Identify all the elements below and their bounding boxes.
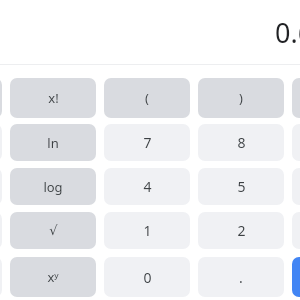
button[interactable]: Function key [0, 257, 2, 297]
staticText: 8 [237, 133, 246, 152]
staticText: ) [239, 89, 243, 107]
button[interactable]: xʸ [10, 257, 96, 297]
button[interactable]: 8 [198, 124, 284, 161]
staticText: 1 [143, 221, 152, 240]
button[interactable]: 4 [104, 168, 190, 205]
button[interactable]: Function key [0, 78, 2, 118]
staticText: ( [145, 89, 149, 107]
button[interactable]: Operator [292, 78, 300, 118]
staticText: ln [47, 134, 59, 152]
button[interactable]: Function key [0, 124, 2, 161]
button[interactable]: 5 [198, 168, 284, 205]
staticText: 2 [237, 221, 246, 240]
button[interactable]: Operator [292, 212, 300, 249]
staticText: √ [49, 223, 58, 238]
button[interactable]: √ [10, 212, 96, 249]
staticText: 7 [143, 133, 152, 152]
staticText: 0.666 [274, 14, 300, 51]
button[interactable]: 0 [104, 257, 190, 297]
button[interactable]: x! [10, 78, 96, 118]
staticText: x! [48, 89, 59, 107]
button[interactable]: 2 [198, 212, 284, 249]
button[interactable]: 1 [104, 212, 190, 249]
button[interactable]: Function key [0, 168, 2, 205]
button[interactable]: . [198, 257, 284, 297]
staticText: 4 [143, 177, 152, 196]
staticText: xʸ [47, 268, 59, 286]
button[interactable]: Equals [292, 257, 300, 297]
button[interactable]: 7 [104, 124, 190, 161]
staticText: 5 [237, 177, 246, 196]
button[interactable]: ( [104, 78, 190, 118]
button[interactable]: log [10, 168, 96, 205]
button[interactable]: Operator [292, 168, 300, 205]
staticText: . [239, 268, 243, 287]
button[interactable]: Function key [0, 212, 2, 249]
staticText: log [43, 178, 63, 196]
button[interactable]: ln [10, 124, 96, 161]
staticText: 0 [143, 268, 152, 287]
button[interactable]: Operator [292, 124, 300, 161]
button[interactable]: ) [198, 78, 284, 118]
